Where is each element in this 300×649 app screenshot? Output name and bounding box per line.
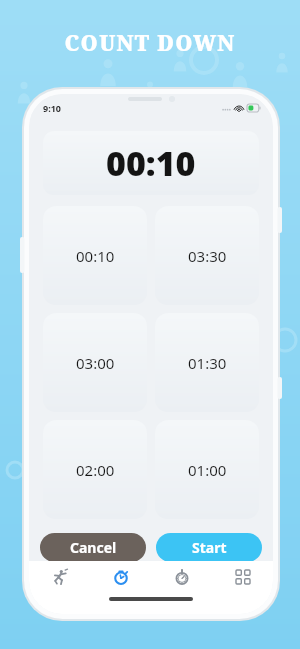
staticText: 03:30 xyxy=(188,246,227,266)
staticText: 00:10 xyxy=(76,246,115,266)
staticText: 01:00 xyxy=(188,460,227,480)
button[interactable]: 03:00 xyxy=(43,313,147,412)
button[interactable]: Stopwatch xyxy=(151,561,212,593)
button[interactable]: Countdown xyxy=(90,561,151,593)
staticText: 9:10 xyxy=(43,102,61,114)
button[interactable]: 00:10 xyxy=(43,206,147,305)
button[interactable]: 01:00 xyxy=(155,420,259,519)
button[interactable]: 01:30 xyxy=(155,313,259,412)
staticText: COUNT DOWN xyxy=(64,29,236,58)
button[interactable]: 02:00 xyxy=(43,420,147,519)
staticText: Start xyxy=(192,538,227,557)
staticText: 02:00 xyxy=(76,460,115,480)
button[interactable]: Start xyxy=(156,533,262,562)
staticText: 00:10 xyxy=(106,140,196,186)
button[interactable]: 03:30 xyxy=(155,206,259,305)
button[interactable]: More xyxy=(212,561,273,593)
button[interactable]: Cancel xyxy=(40,533,146,562)
button[interactable]: Workout xyxy=(29,561,90,593)
staticText: 03:00 xyxy=(76,353,115,373)
staticText: 01:30 xyxy=(188,353,227,373)
staticText: Cancel xyxy=(70,538,117,557)
